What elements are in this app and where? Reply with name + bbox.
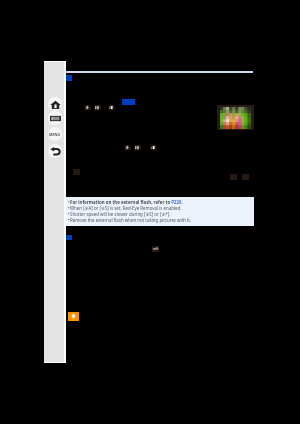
button[interactable]: Menu — [48, 127, 62, 141]
button[interactable]: Home — [48, 97, 62, 111]
staticText: • — [68, 211, 70, 217]
button[interactable]: Back — [48, 144, 62, 158]
staticText: When [⑧A] or [⑧S] is set, Red-Eye Remova… — [70, 205, 182, 211]
staticText: • — [68, 205, 70, 211]
staticText: Shutter speed will be slower during [⑧S]… — [70, 211, 171, 217]
staticText: Remove the external flash when not takin… — [70, 217, 192, 223]
staticText: For information on the external flash, r… — [70, 199, 183, 205]
staticText: • — [68, 199, 70, 205]
staticText: • — [68, 217, 70, 223]
button[interactable]: Table of contents — [48, 111, 62, 125]
button[interactable]: Manual page — [66, 61, 300, 363]
staticText: MENU — [49, 132, 61, 137]
